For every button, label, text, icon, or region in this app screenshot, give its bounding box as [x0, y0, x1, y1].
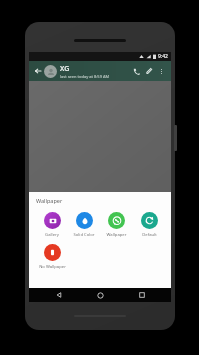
staticText: Solid Color: [73, 232, 95, 238]
button[interactable]: Default: [133, 212, 166, 238]
button[interactable]: Attach: [143, 65, 156, 78]
button[interactable]: Wallpaper Library: [100, 212, 133, 238]
staticText: last seen today at 8:59 AM: [60, 74, 110, 79]
button[interactable]: Recent apps: [130, 288, 154, 302]
staticText: Wallpaper: [36, 197, 63, 204]
button[interactable]: Gallery: [36, 212, 68, 238]
button[interactable]: Contact photo: [44, 65, 57, 78]
staticText: No Wallpaper: [39, 264, 66, 270]
button[interactable]: Back: [33, 66, 43, 76]
staticText: 9:42: [158, 53, 168, 60]
button[interactable]: Solid Color: [68, 212, 100, 238]
staticText: Wallpaper Library: [101, 232, 132, 238]
button[interactable]: Home: [88, 288, 112, 302]
button[interactable]: Back: [47, 288, 71, 302]
button[interactable]: XG: [60, 64, 130, 79]
button[interactable]: Call: [130, 65, 143, 78]
staticText: Gallery: [45, 232, 59, 238]
staticText: XG: [60, 64, 70, 74]
button[interactable]: No Wallpaper: [36, 244, 68, 270]
button[interactable]: More options: [156, 66, 167, 77]
staticText: Default: [142, 232, 157, 238]
